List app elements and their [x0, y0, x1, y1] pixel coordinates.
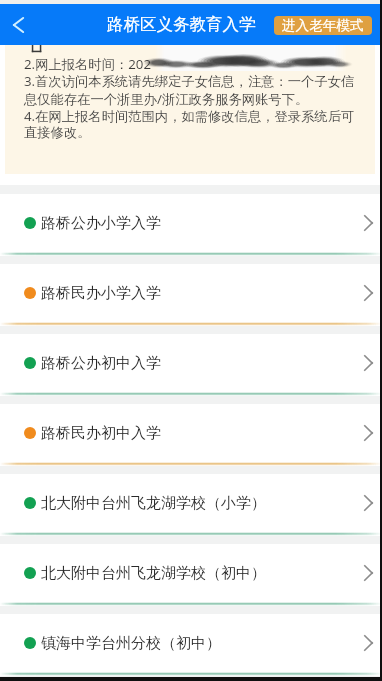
button[interactable]: 进入老年模式: [274, 16, 372, 35]
staticText: 4.在网上报名时间范围内，如需修改信息，登录系统后可: [24, 107, 355, 125]
button[interactable]: 路桥公办小学入学: [0, 194, 382, 252]
button[interactable]: 返回: [7, 13, 30, 36]
staticText: 3.首次访问本系统请先绑定子女信息，注意：一个子女信: [24, 72, 355, 90]
staticText: 路桥民办初中入学: [41, 424, 161, 443]
button[interactable]: 路桥民办初中入学: [0, 404, 382, 462]
button[interactable]: 北大附中台州飞龙湖学校（初中）: [0, 544, 382, 602]
staticText: 路桥区义务教育入学: [107, 14, 256, 35]
staticText: 镇海中学台州分校（初中）: [41, 634, 221, 653]
staticText: 路桥民办小学入学: [41, 284, 161, 303]
staticText: 路桥公办小学入学: [41, 214, 161, 233]
button[interactable]: 镇海中学台州分校（初中）: [0, 614, 382, 672]
button[interactable]: 路桥民办小学入学: [0, 264, 382, 322]
staticText: 北大附中台州飞龙湖学校（初中）: [41, 564, 266, 583]
button[interactable]: 北大附中台州飞龙湖学校（小学）: [0, 474, 382, 532]
staticText: 直接修改。: [24, 124, 91, 141]
staticText: 息仅能存在一个浙里办/浙江政务服务网账号下。: [24, 90, 309, 108]
staticText: 2.网上报名时间：202: [24, 55, 152, 73]
staticText: 北大附中台州飞龙湖学校（小学）: [41, 494, 266, 513]
staticText: 进入老年模式: [282, 17, 364, 34]
button[interactable]: 路桥公办初中入学: [0, 334, 382, 392]
staticText: 路桥公办初中入学: [41, 354, 161, 373]
